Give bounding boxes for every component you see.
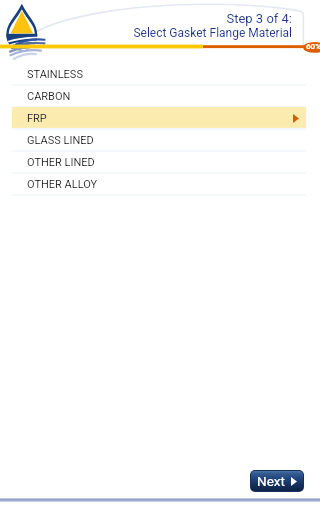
staticText: FRP: [27, 112, 47, 125]
button[interactable]: FRP: [0, 107, 320, 129]
staticText: CARBON: [27, 90, 71, 103]
staticText: OTHER LINED: [27, 156, 95, 169]
button[interactable]: Next: [251, 471, 303, 491]
other: Logo: [2, 1, 48, 63]
button[interactable]: OTHER LINED: [0, 151, 320, 173]
button[interactable]: GLASS LINED: [0, 129, 320, 151]
staticText: Step 3 of 4:: [226, 11, 292, 26]
button[interactable]: CARBON: [0, 85, 320, 107]
staticText: Select Gasket Flange Material: [133, 26, 292, 40]
staticText: OTHER ALLOY: [27, 178, 98, 191]
staticText: 60%: [306, 42, 320, 51]
staticText: GLASS LINED: [27, 134, 94, 147]
button[interactable]: OTHER ALLOY: [0, 173, 320, 195]
button[interactable]: STAINLESS: [0, 63, 320, 85]
staticText: STAINLESS: [27, 68, 83, 81]
staticText: Next: [257, 473, 285, 489]
